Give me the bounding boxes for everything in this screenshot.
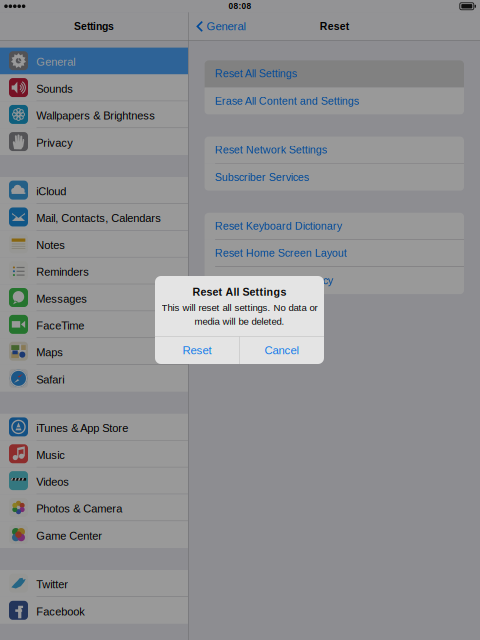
button[interactable]: Safari: [0, 365, 188, 392]
staticText: Maps: [36, 346, 63, 359]
button[interactable]: General: [0, 48, 188, 74]
staticText: Reset: [320, 21, 349, 32]
staticText: Reset: [183, 344, 212, 357]
button[interactable]: Game Center: [0, 521, 188, 548]
staticText: Mail, Contacts, Calendars: [36, 212, 161, 224]
button[interactable]: Erase All Content and Settings: [205, 87, 464, 115]
staticText: Erase All Content and Settings: [215, 95, 359, 107]
button[interactable]: Reminders: [0, 257, 188, 284]
staticText: Reset All Settings: [192, 286, 286, 298]
staticText: Facebook: [36, 605, 85, 618]
staticText: Subscriber Services: [215, 171, 309, 183]
button[interactable]: Facebook: [0, 597, 188, 624]
staticText: iTunes & App Store: [36, 422, 128, 434]
staticText: Music: [36, 449, 65, 461]
staticText: FaceTime: [36, 319, 84, 332]
staticText: Privacy: [36, 137, 73, 149]
button[interactable]: Notes: [0, 231, 188, 258]
button[interactable]: Twitter: [0, 570, 188, 597]
staticText: Reset Location & Privacy: [215, 275, 333, 286]
button[interactable]: Music: [0, 441, 188, 468]
button[interactable]: Mail, Contacts, Calendars: [0, 204, 188, 231]
staticText: General: [207, 20, 247, 33]
staticText: Wallpapers & Brightness: [36, 109, 155, 122]
button[interactable]: Videos: [0, 467, 188, 494]
staticText: Reset Home Screen Layout: [215, 247, 347, 259]
button[interactable]: Maps: [0, 338, 188, 365]
staticText: Twitter: [36, 578, 68, 591]
staticText: media will be deleted.: [194, 316, 284, 327]
staticText: Reset All Settings: [215, 68, 297, 80]
staticText: General: [36, 56, 75, 68]
staticText: Reminders: [36, 266, 89, 278]
staticText: Cancel: [264, 344, 299, 357]
staticText: Sounds: [36, 83, 73, 95]
staticText: iCloud: [36, 185, 66, 198]
button[interactable]: Privacy: [0, 128, 188, 155]
staticText: Notes: [36, 239, 65, 251]
staticText: 08:08: [228, 2, 251, 11]
staticText: Videos: [36, 476, 69, 488]
button[interactable]: Reset Location & Privacy: [205, 267, 464, 294]
button[interactable]: FaceTime: [0, 311, 188, 338]
staticText: Game Center: [36, 530, 102, 542]
button[interactable]: iCloud: [0, 177, 188, 204]
button[interactable]: Subscriber Services: [205, 164, 464, 191]
staticText: Settings: [74, 21, 114, 32]
staticText: Photos & Camera: [36, 503, 122, 515]
button[interactable]: Wallpapers & Brightness: [0, 101, 188, 128]
staticText: Safari: [36, 373, 64, 386]
button[interactable]: Reset Home Screen Layout: [205, 240, 464, 267]
staticText: Messages: [36, 293, 87, 305]
button[interactable]: Reset Network Settings: [205, 137, 464, 164]
button[interactable]: Reset All Settings: [205, 60, 464, 87]
button[interactable]: Reset Keyboard Dictionary: [205, 213, 464, 240]
button[interactable]: Reset: [155, 337, 239, 364]
button[interactable]: Messages: [0, 284, 188, 311]
button[interactable]: iTunes & App Store: [0, 414, 188, 441]
button[interactable]: Sounds: [0, 74, 188, 101]
staticText: Reset Network Settings: [215, 144, 327, 156]
button[interactable]: Cancel: [240, 337, 324, 364]
staticText: This will reset all settings. No data or: [161, 302, 317, 313]
staticText: Reset Keyboard Dictionary: [215, 220, 342, 232]
button[interactable]: General: [189, 12, 253, 40]
button[interactable]: Photos & Camera: [0, 494, 188, 521]
